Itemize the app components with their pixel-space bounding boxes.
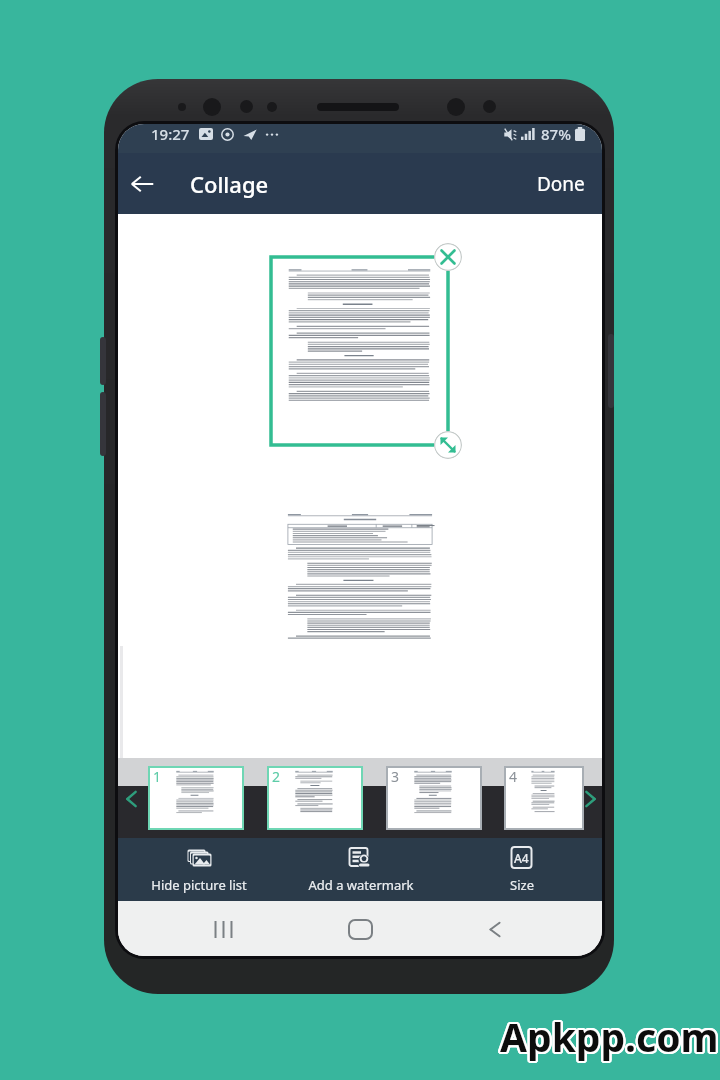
staticText: Apkpp.com	[500, 1008, 719, 1061]
staticText: Done	[537, 171, 585, 197]
staticText: Add a watermark	[308, 876, 414, 894]
button[interactable]: Done	[517, 153, 602, 214]
button[interactable]: 1	[148, 766, 244, 830]
staticText: Apkpp.com	[500, 1010, 719, 1063]
staticText: 87%	[541, 124, 571, 144]
staticText: Apkpp.com	[502, 1009, 720, 1062]
staticText: Apkpp.com	[502, 1011, 720, 1064]
button[interactable]: 3	[386, 766, 482, 830]
staticText: Apkpp.com	[501, 1012, 720, 1065]
staticText: Apkpp.com	[499, 1008, 718, 1061]
button[interactable]: Recent apps	[201, 907, 245, 951]
staticText: 4	[509, 767, 518, 786]
staticText: Apkpp.com	[500, 1009, 719, 1062]
button[interactable]: 4	[504, 766, 584, 830]
button[interactable]: A4	[441, 838, 602, 901]
staticText: Size	[510, 876, 534, 894]
button[interactable]: Back	[118, 153, 166, 214]
staticText: Apkpp.com	[500, 1011, 719, 1064]
staticText: 2	[272, 767, 281, 786]
staticText: 1	[153, 767, 162, 786]
staticText: 3	[391, 767, 400, 786]
staticText: Apkpp.com	[501, 1010, 720, 1063]
staticText: Collage	[190, 169, 269, 199]
button[interactable]: Add a watermark	[280, 838, 441, 901]
staticText: Apkpp.com	[499, 1011, 718, 1064]
staticText: Apkpp.com	[500, 1012, 719, 1065]
staticText: Apkpp.com	[499, 1012, 718, 1065]
staticText: Apkpp.com	[498, 1009, 717, 1062]
staticText: Apkpp.com	[499, 1009, 718, 1062]
staticText: Hide picture list	[151, 876, 247, 894]
staticText: Apkpp.com	[501, 1011, 720, 1064]
button[interactable]: Back	[473, 907, 517, 951]
staticText: A4	[514, 850, 529, 866]
staticText: Apkpp.com	[502, 1010, 720, 1063]
staticText: Apkpp.com	[501, 1008, 720, 1061]
staticText: Apkpp.com	[498, 1010, 717, 1063]
button[interactable]: Home	[338, 907, 382, 951]
button[interactable]: Hide picture list	[118, 838, 280, 901]
button[interactable]: Remove page	[434, 243, 462, 271]
button[interactable]: Previous page	[119, 787, 143, 811]
staticText: Apkpp.com	[501, 1009, 720, 1062]
button[interactable]: 2	[267, 766, 363, 830]
staticText: Apkpp.com	[498, 1011, 717, 1064]
staticText: Apkpp.com	[499, 1010, 718, 1063]
button[interactable]: Resize page	[434, 431, 462, 459]
button[interactable]: Next page	[578, 787, 602, 811]
staticText: 19:27	[151, 124, 190, 144]
